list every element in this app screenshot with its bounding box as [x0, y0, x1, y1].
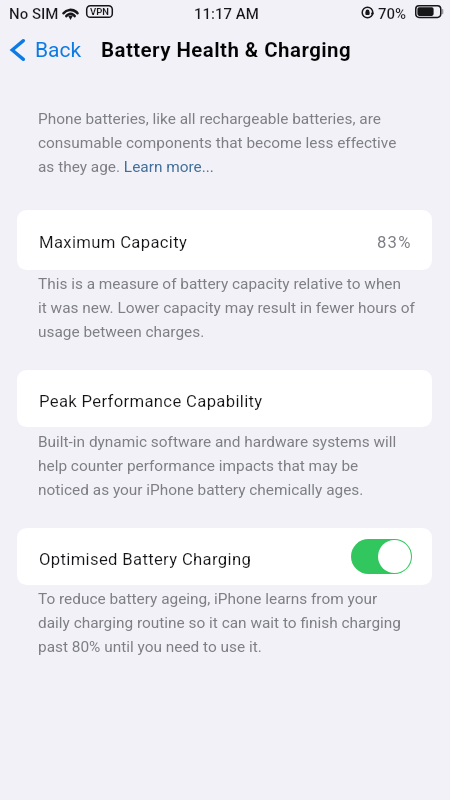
staticText: noticed as your iPhone battery chemicall… — [38, 481, 364, 499]
staticText: Battery Health & Charging — [101, 38, 352, 62]
button[interactable]: Peak Performance Capability — [17, 370, 432, 427]
staticText: help counter performance impacts that ma… — [38, 457, 359, 475]
staticText: This is a measure of battery capacity re… — [38, 275, 402, 293]
staticText: usage between charges. — [38, 323, 205, 341]
staticText: Peak Performance Capability — [39, 392, 263, 412]
button[interactable]: Maximum Capacity — [17, 210, 432, 270]
staticText: it was new. Lower capacity may result in… — [38, 299, 415, 317]
staticText: 11:17 AM — [194, 5, 259, 23]
staticText: Optimised Battery Charging — [39, 550, 252, 570]
staticText: No SIM — [9, 5, 59, 23]
button[interactable]: Optimised Battery Charging — [17, 528, 432, 585]
staticText: daily charging routine so it can wait to… — [38, 614, 401, 632]
staticText: VPN — [90, 6, 110, 17]
staticText: Maximum Capacity — [39, 233, 188, 253]
staticText: consumable components that become less e… — [38, 134, 397, 152]
staticText: past 80% until you need to use it. — [38, 638, 262, 656]
staticText: Phone batteries, like all rechargeable b… — [38, 110, 381, 128]
button[interactable]: Optimised Battery Charging toggle, on — [351, 539, 412, 574]
staticText: Back — [35, 38, 82, 63]
staticText: Built-in dynamic software and hardware s… — [38, 433, 397, 451]
staticText: 70% — [378, 5, 407, 23]
staticText: as they age. Learn more... — [38, 158, 214, 176]
button[interactable]: Back — [7, 30, 82, 70]
staticText: 83% — [377, 233, 412, 253]
staticText: To reduce battery ageing, iPhone learns … — [38, 590, 378, 608]
